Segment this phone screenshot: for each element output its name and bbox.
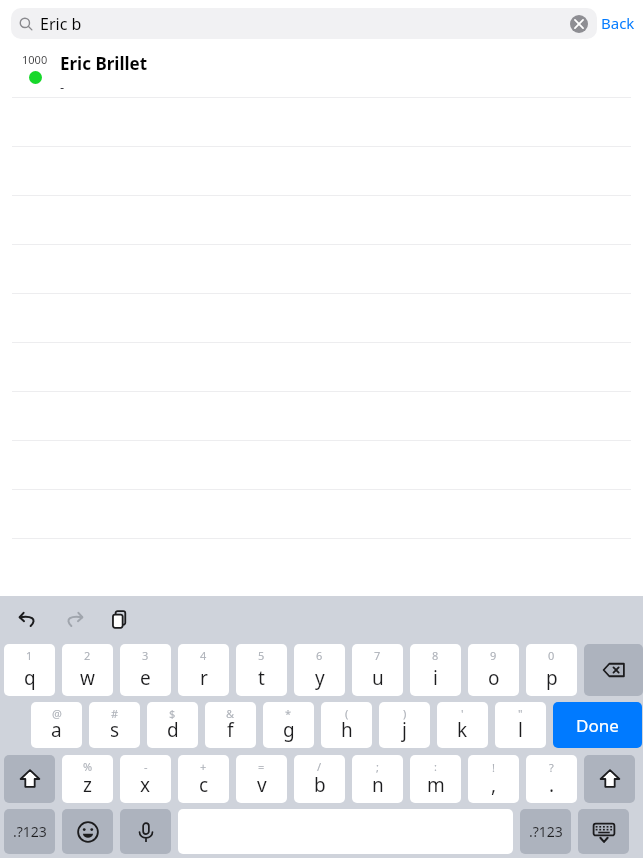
- button[interactable]: Hide keyboard: [578, 809, 629, 854]
- button[interactable]: #: [89, 702, 140, 748]
- button[interactable]: Shift: [4, 755, 55, 803]
- staticText: g: [283, 717, 295, 743]
- button[interactable]: Emoji: [62, 809, 113, 854]
- button[interactable]: Undo: [14, 605, 42, 633]
- button[interactable]: 9: [468, 644, 519, 696]
- button[interactable]: Eric b: [11, 8, 597, 39]
- staticText: i: [433, 665, 438, 691]
- staticText: c: [199, 772, 209, 798]
- staticText: x: [140, 772, 151, 798]
- button[interactable]: ): [379, 702, 430, 748]
- staticText: 7: [374, 648, 381, 663]
- staticText: r: [200, 665, 208, 691]
- staticText: .: [549, 772, 555, 798]
- button[interactable]: Shift: [584, 755, 635, 803]
- button[interactable]: Back: [601, 8, 635, 38]
- staticText: ": [518, 706, 523, 721]
- staticText: 9: [490, 648, 497, 663]
- staticText: ,: [491, 772, 497, 798]
- staticText: Done: [576, 714, 619, 737]
- button[interactable]: 1: [4, 644, 55, 696]
- staticText: 4: [200, 648, 207, 663]
- button[interactable]: !: [468, 755, 519, 803]
- staticText: w: [80, 665, 95, 691]
- button[interactable]: ;: [352, 755, 403, 803]
- staticText: d: [167, 717, 179, 743]
- staticText: v: [257, 772, 267, 798]
- staticText: $: [169, 706, 176, 721]
- staticText: Eric Brillet: [60, 52, 148, 75]
- button[interactable]: ': [437, 702, 488, 748]
- button[interactable]: 6: [294, 644, 345, 696]
- staticText: h: [341, 717, 353, 743]
- button[interactable]: .?123: [520, 809, 571, 854]
- staticText: 1: [26, 648, 33, 663]
- button[interactable]: 7: [352, 644, 403, 696]
- button[interactable]: Copy: [106, 605, 134, 633]
- button[interactable]: .?123: [4, 809, 55, 854]
- button[interactable]: @: [31, 702, 82, 748]
- staticText: ': [461, 706, 464, 721]
- staticText: m: [427, 772, 445, 798]
- button[interactable]: +: [178, 755, 229, 803]
- staticText: :: [434, 759, 437, 774]
- button[interactable]: Clear search: [570, 15, 588, 33]
- button[interactable]: 5: [236, 644, 287, 696]
- staticText: /: [317, 759, 322, 774]
- staticText: -: [60, 78, 65, 96]
- button[interactable]: *: [263, 702, 314, 748]
- button[interactable]: &: [205, 702, 256, 748]
- button[interactable]: Done: [553, 702, 642, 748]
- button[interactable]: %: [62, 755, 113, 803]
- staticText: 0: [548, 648, 555, 663]
- button[interactable]: Dictation: [120, 809, 171, 854]
- staticText: .?123: [13, 822, 47, 841]
- staticText: t: [258, 665, 265, 691]
- button[interactable]: 0: [526, 644, 577, 696]
- staticText: ;: [376, 759, 379, 774]
- staticText: z: [83, 772, 92, 798]
- button[interactable]: /: [294, 755, 345, 803]
- staticText: f: [227, 717, 234, 743]
- button[interactable]: 2: [62, 644, 113, 696]
- staticText: %: [83, 759, 93, 774]
- staticText: #: [111, 706, 119, 721]
- staticText: a: [51, 717, 62, 743]
- staticText: *: [285, 706, 292, 721]
- button[interactable]: 3: [120, 644, 171, 696]
- staticText: 6: [316, 648, 323, 663]
- staticText: &: [226, 706, 235, 721]
- staticText: j: [402, 717, 407, 743]
- staticText: k: [457, 717, 468, 743]
- staticText: .?123: [529, 822, 563, 841]
- staticText: y: [315, 665, 325, 691]
- staticText: b: [314, 772, 326, 798]
- staticText: q: [24, 665, 36, 691]
- button[interactable]: =: [236, 755, 287, 803]
- staticText: !: [492, 760, 495, 775]
- staticText: l: [518, 717, 523, 743]
- staticText: p: [546, 665, 558, 691]
- button[interactable]: Redo: [60, 605, 88, 633]
- button[interactable]: ?: [526, 755, 577, 803]
- staticText: s: [110, 717, 120, 743]
- button[interactable]: (: [321, 702, 372, 748]
- button[interactable]: 1000: [0, 46, 643, 97]
- staticText: (: [345, 706, 349, 721]
- button[interactable]: :: [410, 755, 461, 803]
- staticText: 2: [84, 648, 91, 663]
- staticText: 8: [432, 648, 439, 663]
- button[interactable]: $: [147, 702, 198, 748]
- staticText: 5: [258, 648, 265, 663]
- button[interactable]: Backspace: [584, 644, 643, 696]
- staticText: o: [488, 665, 500, 691]
- staticText: u: [372, 665, 384, 691]
- button[interactable]: ": [495, 702, 546, 748]
- button[interactable]: 4: [178, 644, 229, 696]
- button[interactable]: 8: [410, 644, 461, 696]
- staticText: @: [52, 706, 62, 721]
- staticText: -: [144, 759, 148, 774]
- button[interactable]: -: [120, 755, 171, 803]
- staticText: ?: [549, 760, 554, 775]
